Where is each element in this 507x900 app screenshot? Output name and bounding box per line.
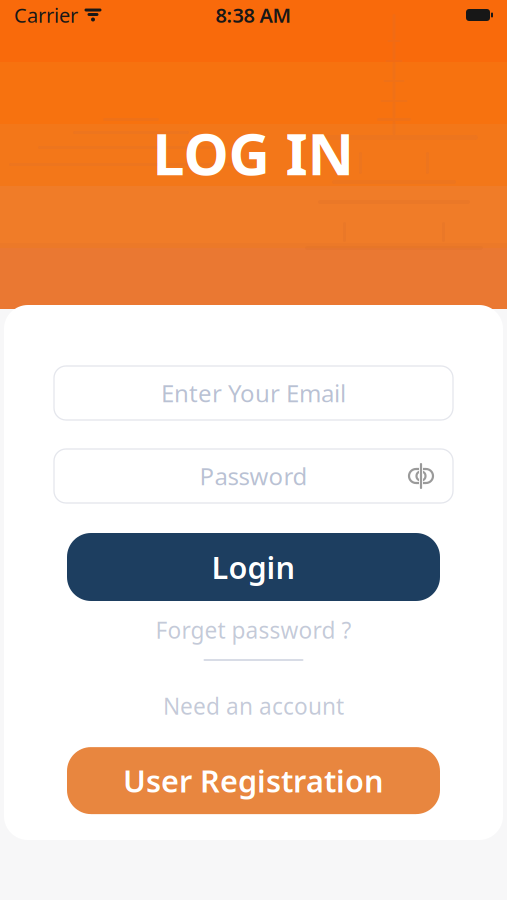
staticText: Forget password ? [155,615,351,645]
button[interactable]: Login [67,533,440,601]
staticText: Password [199,460,307,492]
staticText: User Registration [123,760,384,801]
staticText: Need an account [163,691,344,721]
button[interactable]: Forget password ? [67,609,440,651]
button[interactable]: User Registration [67,747,440,814]
staticText: Login [211,547,295,587]
button[interactable]: Show password [399,454,443,498]
staticText: Carrier [14,2,78,28]
staticText: LOG IN [152,115,354,191]
staticText: Enter Your Email [161,377,346,409]
staticText: 8:38 AM [215,2,291,28]
